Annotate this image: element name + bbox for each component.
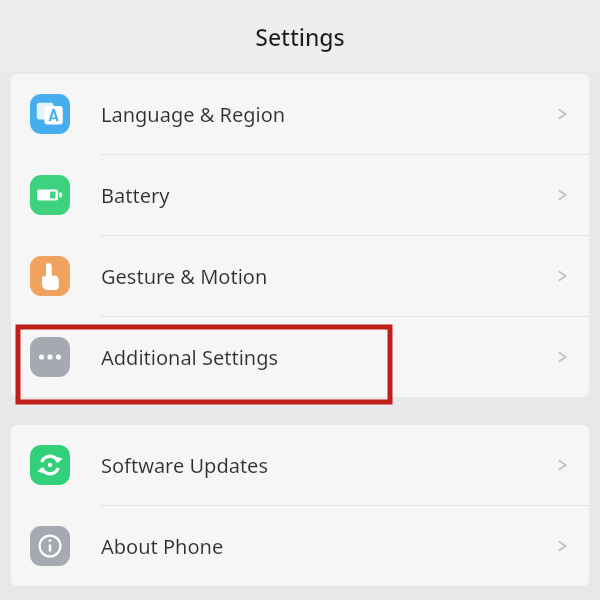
- staticText: Settings: [255, 21, 345, 52]
- button[interactable]: Software Updates: [11, 425, 589, 505]
- staticText: Battery: [101, 182, 553, 209]
- staticText: Language & Region: [101, 101, 553, 128]
- staticText: Gesture & Motion: [101, 263, 553, 290]
- staticText: About Phone: [101, 533, 553, 560]
- button[interactable]: Gesture & Motion: [11, 236, 589, 316]
- button[interactable]: Battery: [11, 155, 589, 235]
- staticText: Additional Settings: [101, 344, 553, 371]
- button[interactable]: Additional Settings: [11, 317, 589, 397]
- staticText: Software Updates: [101, 452, 553, 479]
- button[interactable]: About Phone: [11, 506, 589, 586]
- button[interactable]: Language & Region: [11, 74, 589, 154]
